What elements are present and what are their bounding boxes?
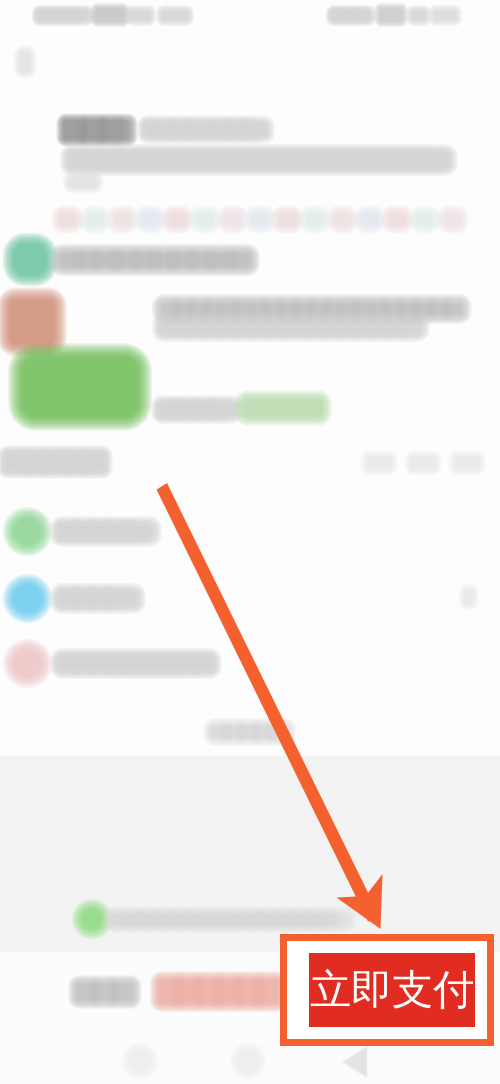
- button[interactable]: [0, 0, 500, 1084]
- staticText: 立即支付: [310, 965, 474, 1015]
- button[interactable]: Recents: [0, 0, 500, 1084]
- button[interactable]: 立即支付: [309, 953, 475, 1027]
- button[interactable]: Back: [0, 0, 500, 1084]
- button[interactable]: Home: [0, 0, 500, 1084]
- button[interactable]: [0, 0, 500, 1084]
- button[interactable]: [0, 0, 500, 1084]
- button[interactable]: Back: [0, 0, 500, 1084]
